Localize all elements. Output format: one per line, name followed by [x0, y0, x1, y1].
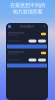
staticText: 地方发现答案	[12, 9, 42, 15]
staticText: 在最意想不到的	[10, 2, 45, 9]
staticText: document	[20, 25, 34, 28]
